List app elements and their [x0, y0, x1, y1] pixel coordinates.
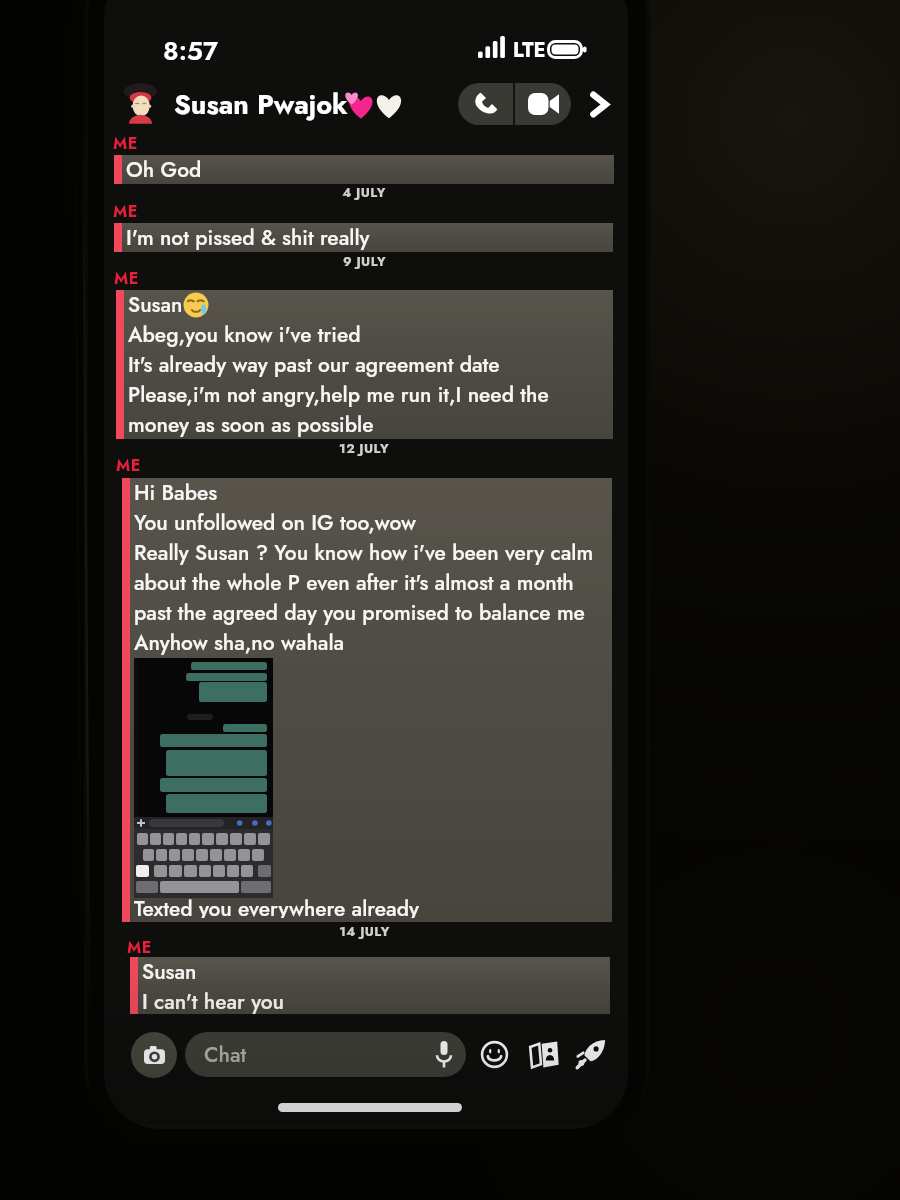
button[interactable]: Susan [116, 290, 613, 439]
button[interactable]: Oh God [114, 155, 614, 184]
staticText: ME [127, 936, 153, 959]
staticText: ME [116, 454, 142, 477]
button[interactable]: Chat [185, 1032, 466, 1077]
staticText: It's already way past our agreement date [128, 350, 500, 380]
staticText: ME [113, 200, 139, 223]
staticText: Texted you everywhere already [134, 894, 419, 918]
button[interactable]: I'm not pissed & shit really [114, 223, 613, 252]
staticText: 9 JULY [343, 252, 386, 271]
staticText: about the whole P even after it's almost… [134, 568, 574, 598]
staticText: I can't hear you [142, 987, 285, 1014]
staticText: 14 JULY [339, 922, 390, 941]
button[interactable]: Profile Susan Pwajok [124, 82, 157, 127]
staticText: 8:57 [163, 32, 219, 70]
staticText: I'm not pissed & shit really [126, 223, 370, 252]
staticText: 4 JULY [342, 183, 386, 202]
button[interactable]: Cameos [521, 1031, 567, 1077]
staticText: Chat [204, 1040, 247, 1070]
staticText: Really Susan ? You know how i've been ve… [134, 538, 594, 568]
button[interactable]: Hi Babes [122, 478, 612, 922]
staticText: Oh God [126, 155, 202, 184]
staticText: ME [113, 132, 139, 155]
staticText: ME [114, 267, 140, 290]
button[interactable]: More options [578, 83, 620, 125]
staticText: 12 JULY [339, 439, 389, 458]
button[interactable]: Stickers [471, 1031, 517, 1077]
button[interactable]: Voice call [458, 83, 513, 125]
staticText: Susan [142, 957, 197, 987]
button[interactable]: Rocket [568, 1031, 614, 1077]
staticText: You unfollowed on IG too,wow [134, 508, 416, 538]
staticText: LTE [513, 36, 546, 65]
button[interactable]: Susan [130, 957, 610, 1014]
staticText: Abeg,you know i've tried [128, 320, 361, 350]
staticText: Hi Babes [134, 478, 218, 508]
staticText: money as soon as possible [128, 410, 374, 439]
staticText: Please,i'm not angry,help me run it,I ne… [128, 380, 549, 410]
button[interactable]: Open camera [131, 1032, 177, 1078]
staticText: past the agreed day you promised to bala… [134, 598, 585, 628]
staticText: Susan Pwajok [174, 85, 348, 124]
staticText: Susan [128, 290, 183, 320]
button[interactable]: Video call [515, 83, 571, 125]
staticText: Anyhow sha,no wahala [134, 628, 345, 658]
